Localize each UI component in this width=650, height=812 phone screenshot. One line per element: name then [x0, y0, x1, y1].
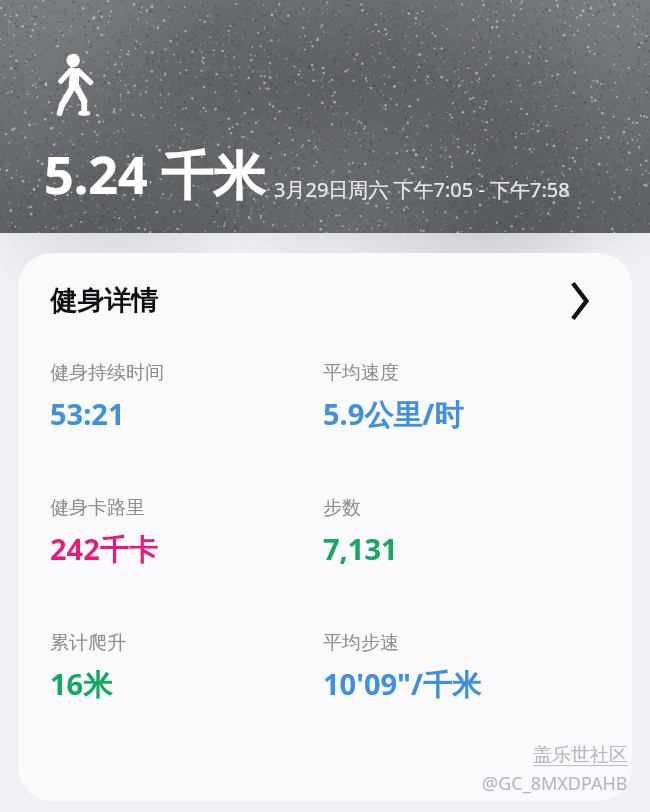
- staticText: 盖乐世社区: [533, 743, 628, 767]
- other: 步行: [52, 54, 98, 116]
- staticText: 53:21: [50, 394, 125, 433]
- staticText: 健身详情: [50, 284, 158, 318]
- staticText: 5.9公里/时: [323, 394, 464, 434]
- staticText: 16米: [50, 664, 113, 704]
- staticText: 累计爬升: [50, 631, 126, 655]
- staticText: 7,131: [323, 529, 398, 568]
- staticText: @GC_8MXDPAHB: [482, 771, 628, 796]
- staticText: 步数: [323, 496, 361, 520]
- button[interactable]: 健身详情: [18, 253, 632, 348]
- staticText: 242千卡: [50, 529, 158, 569]
- staticText: 3月29日周六 下午7:05 - 下午7:58: [274, 176, 570, 203]
- staticText: 5.24 千米: [44, 138, 266, 209]
- staticText: 健身卡路里: [50, 496, 145, 520]
- staticText: 平均速度: [323, 361, 399, 385]
- staticText: 平均步速: [323, 631, 399, 655]
- staticText: 10'09"/千米: [323, 664, 481, 704]
- staticText: 健身持续时间: [50, 361, 164, 385]
- other: 查看健身详情: [558, 279, 602, 323]
